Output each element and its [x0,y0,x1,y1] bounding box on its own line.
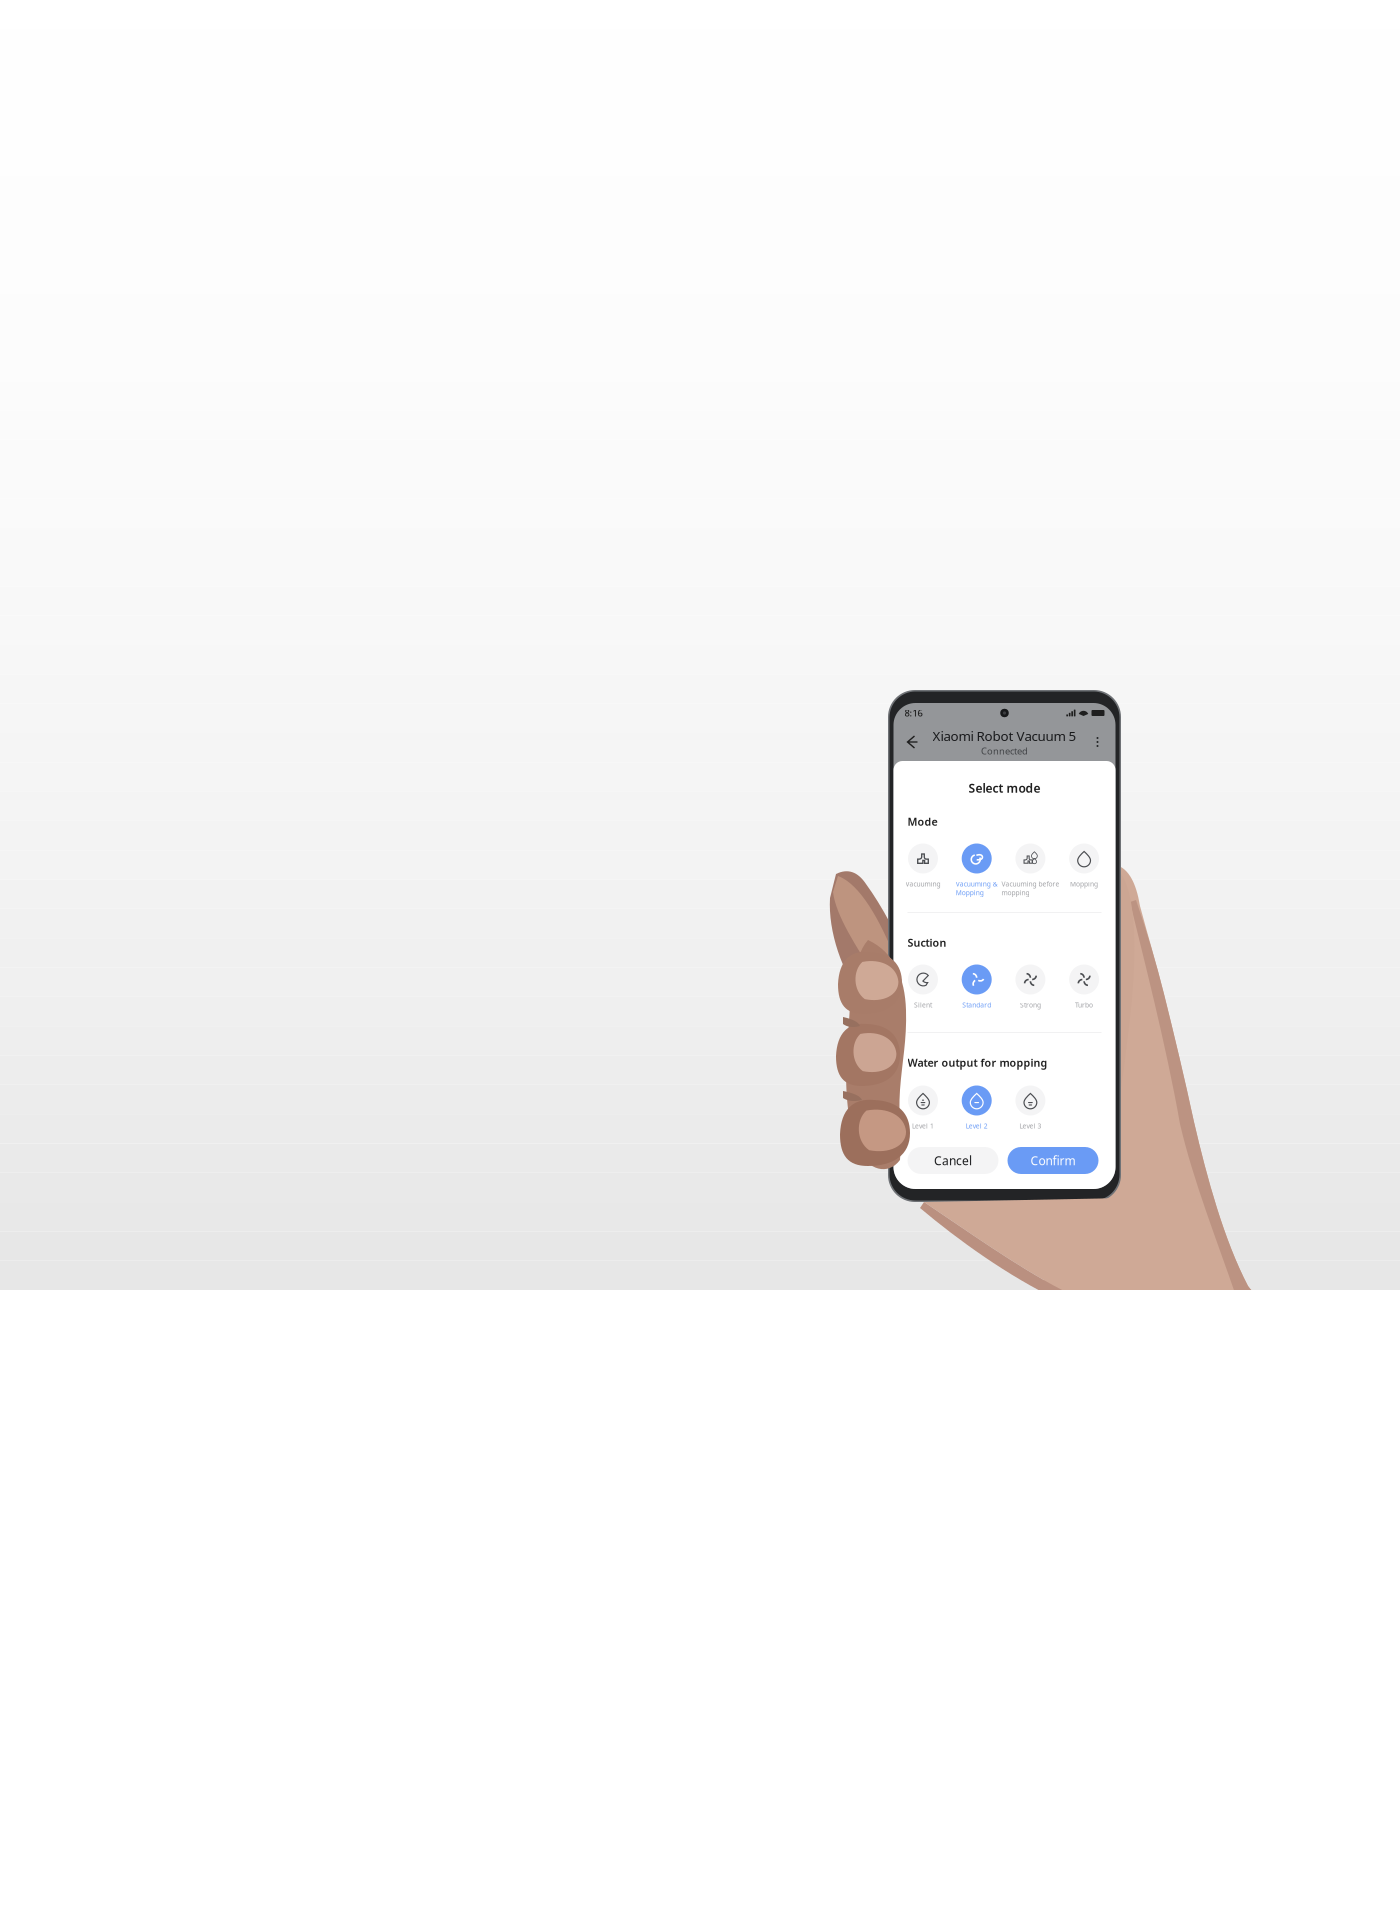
button[interactable]: More options [1084,729,1110,755]
button[interactable]: Cancel [907,1147,998,1174]
staticText: Standard [962,1000,991,1009]
staticText: Vacuuming before mopping [1001,879,1059,897]
staticText: 8:16 [904,707,922,719]
button[interactable]: Silent [896,964,950,1022]
staticText: Mode [907,814,937,829]
button[interactable]: Standard [950,964,1004,1022]
button[interactable]: Vacuuming before mopping [1003,843,1057,901]
staticText: Xiaomi Robot Vacuum 5 [932,727,1076,745]
staticText: Strong [1020,1000,1041,1009]
button[interactable]: Level 1 [896,1085,950,1143]
staticText: Silent [914,1000,932,1009]
button[interactable]: Vacuuming & Mopping [950,843,1004,901]
button[interactable]: Confirm [1007,1147,1098,1174]
button[interactable]: Vacuuming [896,843,950,901]
staticText: Level 3 [1019,1121,1041,1130]
staticText: Turbo [1075,1000,1093,1009]
button[interactable]: Turbo [1057,964,1111,1022]
staticText: Cancel [934,1152,972,1168]
staticText: Level 2 [966,1121,988,1130]
staticText: Vacuuming & Mopping [956,879,998,897]
staticText: Mopping [1070,879,1098,888]
staticText: Confirm [1030,1152,1075,1168]
button[interactable]: Strong [1003,964,1057,1022]
staticText: Level 1 [912,1121,934,1130]
button[interactable]: Level 3 [1003,1085,1057,1143]
staticText: Suction [907,935,946,950]
staticText: Connected [981,745,1028,757]
staticText: Select mode [968,780,1040,796]
button[interactable]: Level 2 [950,1085,1004,1143]
staticText: Water output for mopping [907,1055,1047,1070]
button[interactable]: Back [898,729,924,755]
button[interactable]: Mopping [1057,843,1111,901]
staticText: Vacuuming [905,879,940,888]
